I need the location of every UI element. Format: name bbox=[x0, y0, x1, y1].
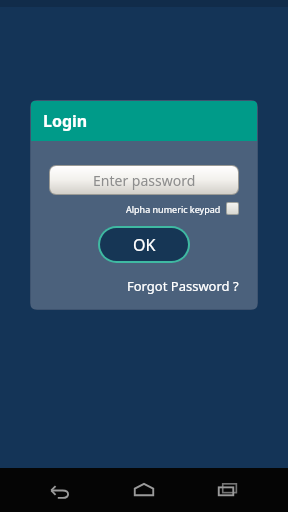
button[interactable]: Forgot Password ? bbox=[127, 277, 239, 295]
staticText: Forgot Password ? bbox=[127, 277, 239, 295]
button[interactable]: Recent apps bbox=[204, 468, 252, 512]
staticText: Login bbox=[43, 110, 88, 132]
button[interactable]: OK bbox=[100, 228, 188, 261]
button[interactable]: Enter password bbox=[50, 166, 238, 194]
staticText: OK bbox=[133, 234, 156, 256]
button[interactable]: Back bbox=[36, 468, 84, 512]
button[interactable]: Alpha numeric keypad bbox=[49, 202, 239, 215]
staticText: Alpha numeric keypad bbox=[126, 203, 221, 215]
button[interactable]: Home bbox=[120, 468, 168, 512]
staticText: Enter password bbox=[93, 171, 196, 190]
